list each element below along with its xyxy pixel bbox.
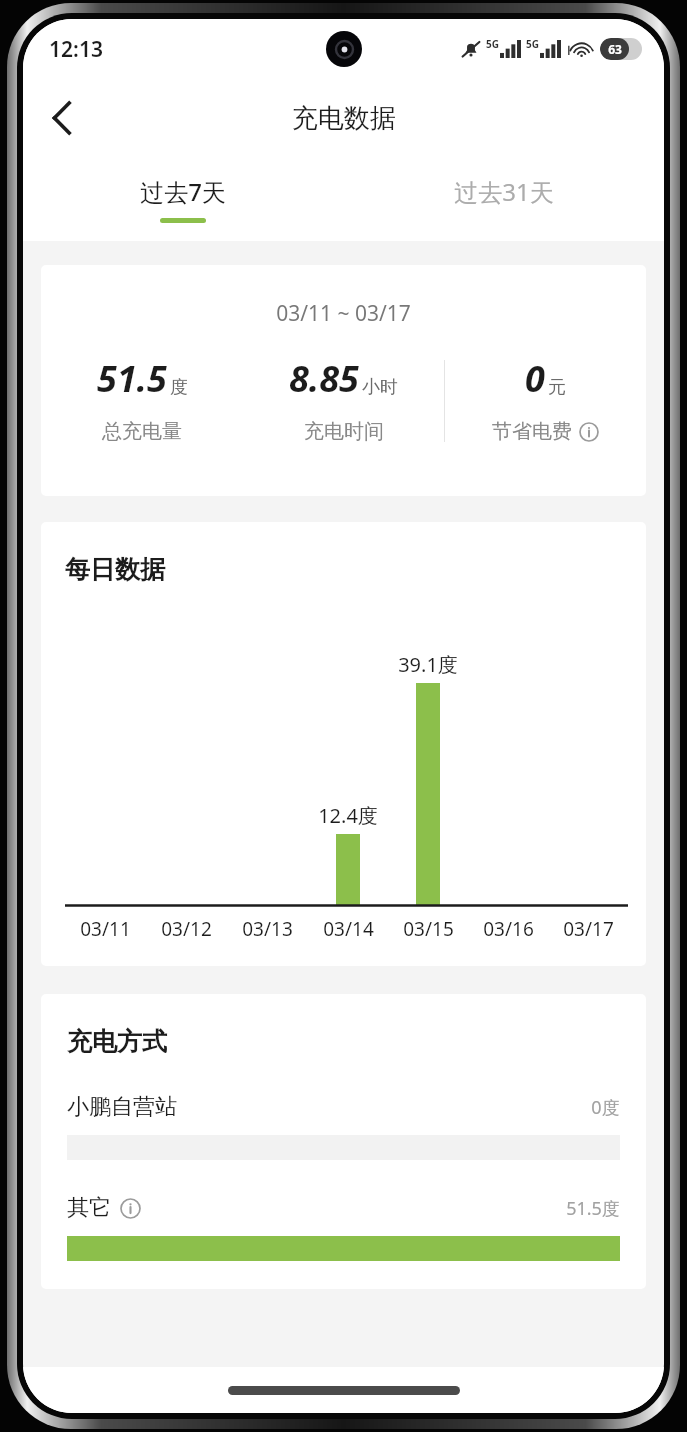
staticText: 总充电量: [102, 419, 182, 444]
button[interactable]: 过去31天: [343, 157, 664, 241]
staticText: 03/11: [80, 916, 131, 942]
staticText: 51.5: [97, 354, 167, 403]
staticText: 03/14: [323, 916, 374, 942]
staticText: 度: [170, 376, 188, 399]
staticText: 每日数据: [65, 554, 165, 585]
staticText: 节省电费: [492, 419, 572, 444]
staticText: 5G: [486, 37, 499, 51]
staticText: 过去7天: [140, 175, 226, 208]
staticText: 其它: [67, 1194, 111, 1222]
staticText: 5G: [526, 37, 539, 51]
staticText: 03/11 ~ 03/17: [276, 299, 411, 328]
staticText: 03/15: [403, 916, 454, 942]
staticText: 03/13: [242, 916, 293, 942]
staticText: 03/17: [563, 916, 614, 942]
staticText: 0: [525, 354, 545, 403]
staticText: 12:13: [49, 35, 103, 64]
button[interactable]: 充电方式: [41, 994, 646, 1289]
button[interactable]: 每日数据: [41, 522, 646, 966]
button[interactable]: Back: [35, 91, 89, 145]
staticText: 63: [608, 41, 622, 57]
staticText: 小时: [362, 376, 398, 399]
staticText: 12.4度: [318, 802, 378, 829]
staticText: 元: [548, 376, 566, 399]
staticText: 51.5度: [566, 1196, 620, 1221]
button[interactable]: 过去7天: [23, 157, 343, 241]
staticText: 8.85: [289, 354, 359, 403]
staticText: 充电方式: [67, 1026, 167, 1057]
staticText: 03/16: [483, 916, 534, 942]
staticText: 充电时间: [304, 419, 384, 444]
button[interactable]: 03/11 ~ 03/17: [41, 265, 646, 496]
staticText: 充电数据: [292, 102, 396, 135]
staticText: 0度: [591, 1095, 620, 1120]
staticText: 过去31天: [454, 175, 554, 208]
staticText: 39.1度: [398, 651, 458, 678]
staticText: 小鹏自营站: [67, 1093, 177, 1121]
staticText: 03/12: [161, 916, 212, 942]
